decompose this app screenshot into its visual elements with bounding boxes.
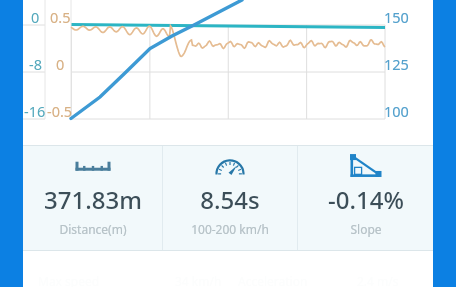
staticText: 8.54s [200, 183, 260, 216]
staticText: 100 [384, 101, 409, 121]
staticText: 100-200 km/h [191, 221, 269, 237]
staticText: 0 [31, 7, 40, 27]
staticText: 0 [56, 54, 65, 74]
staticText: 0.5 [50, 7, 71, 27]
staticText: 125 [384, 54, 409, 74]
staticText: -0.14% [328, 183, 404, 216]
staticText: -16 [24, 101, 46, 121]
button[interactable]: -0.14% [298, 145, 433, 251]
button[interactable]: 8.54s [163, 145, 297, 251]
staticText: -8 [29, 54, 42, 74]
staticText: -0.5 [47, 101, 73, 121]
staticText: Slope [350, 221, 382, 237]
staticText: 371.83m [44, 183, 142, 216]
staticText: Distance(m) [59, 221, 127, 237]
button[interactable]: 371.83m [23, 145, 162, 251]
staticText: 150 [384, 7, 409, 27]
